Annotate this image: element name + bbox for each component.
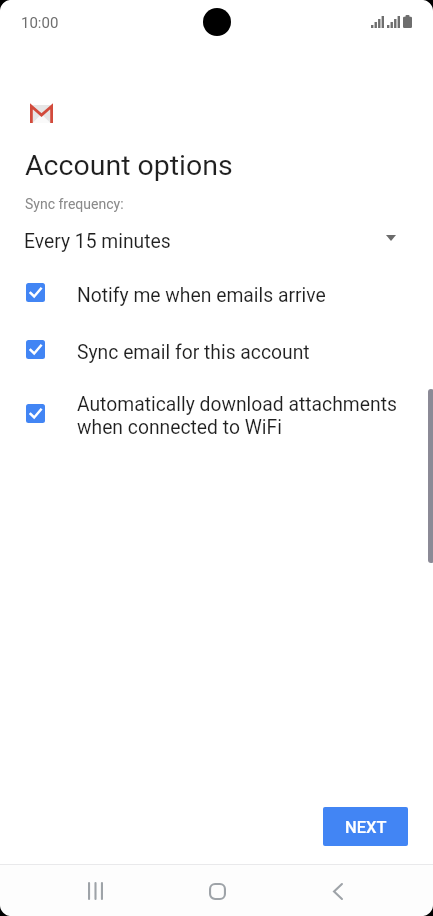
staticText: NEXT	[345, 818, 387, 837]
button[interactable]: Every 15 minutes	[0, 225, 433, 257]
button[interactable]: Back	[310, 865, 366, 916]
button[interactable]: Notify me when emails arrive	[0, 271, 433, 319]
staticText: Every 15 minutes	[24, 230, 171, 253]
staticText: Notify me when emails arrive	[77, 284, 326, 307]
staticText: Automatically download attachments when …	[77, 393, 397, 439]
button[interactable]: Automatically download attachments when …	[0, 381, 433, 447]
staticText: Sync email for this account	[77, 341, 310, 364]
staticText: Sync frequency:	[25, 196, 124, 212]
button[interactable]: Recent apps	[67, 865, 123, 916]
staticText: 10:00	[21, 14, 59, 32]
button[interactable]: Sync email for this account	[0, 328, 433, 376]
button[interactable]: Home	[189, 865, 245, 916]
staticText: Account options	[25, 149, 233, 182]
button[interactable]: NEXT	[323, 807, 408, 846]
